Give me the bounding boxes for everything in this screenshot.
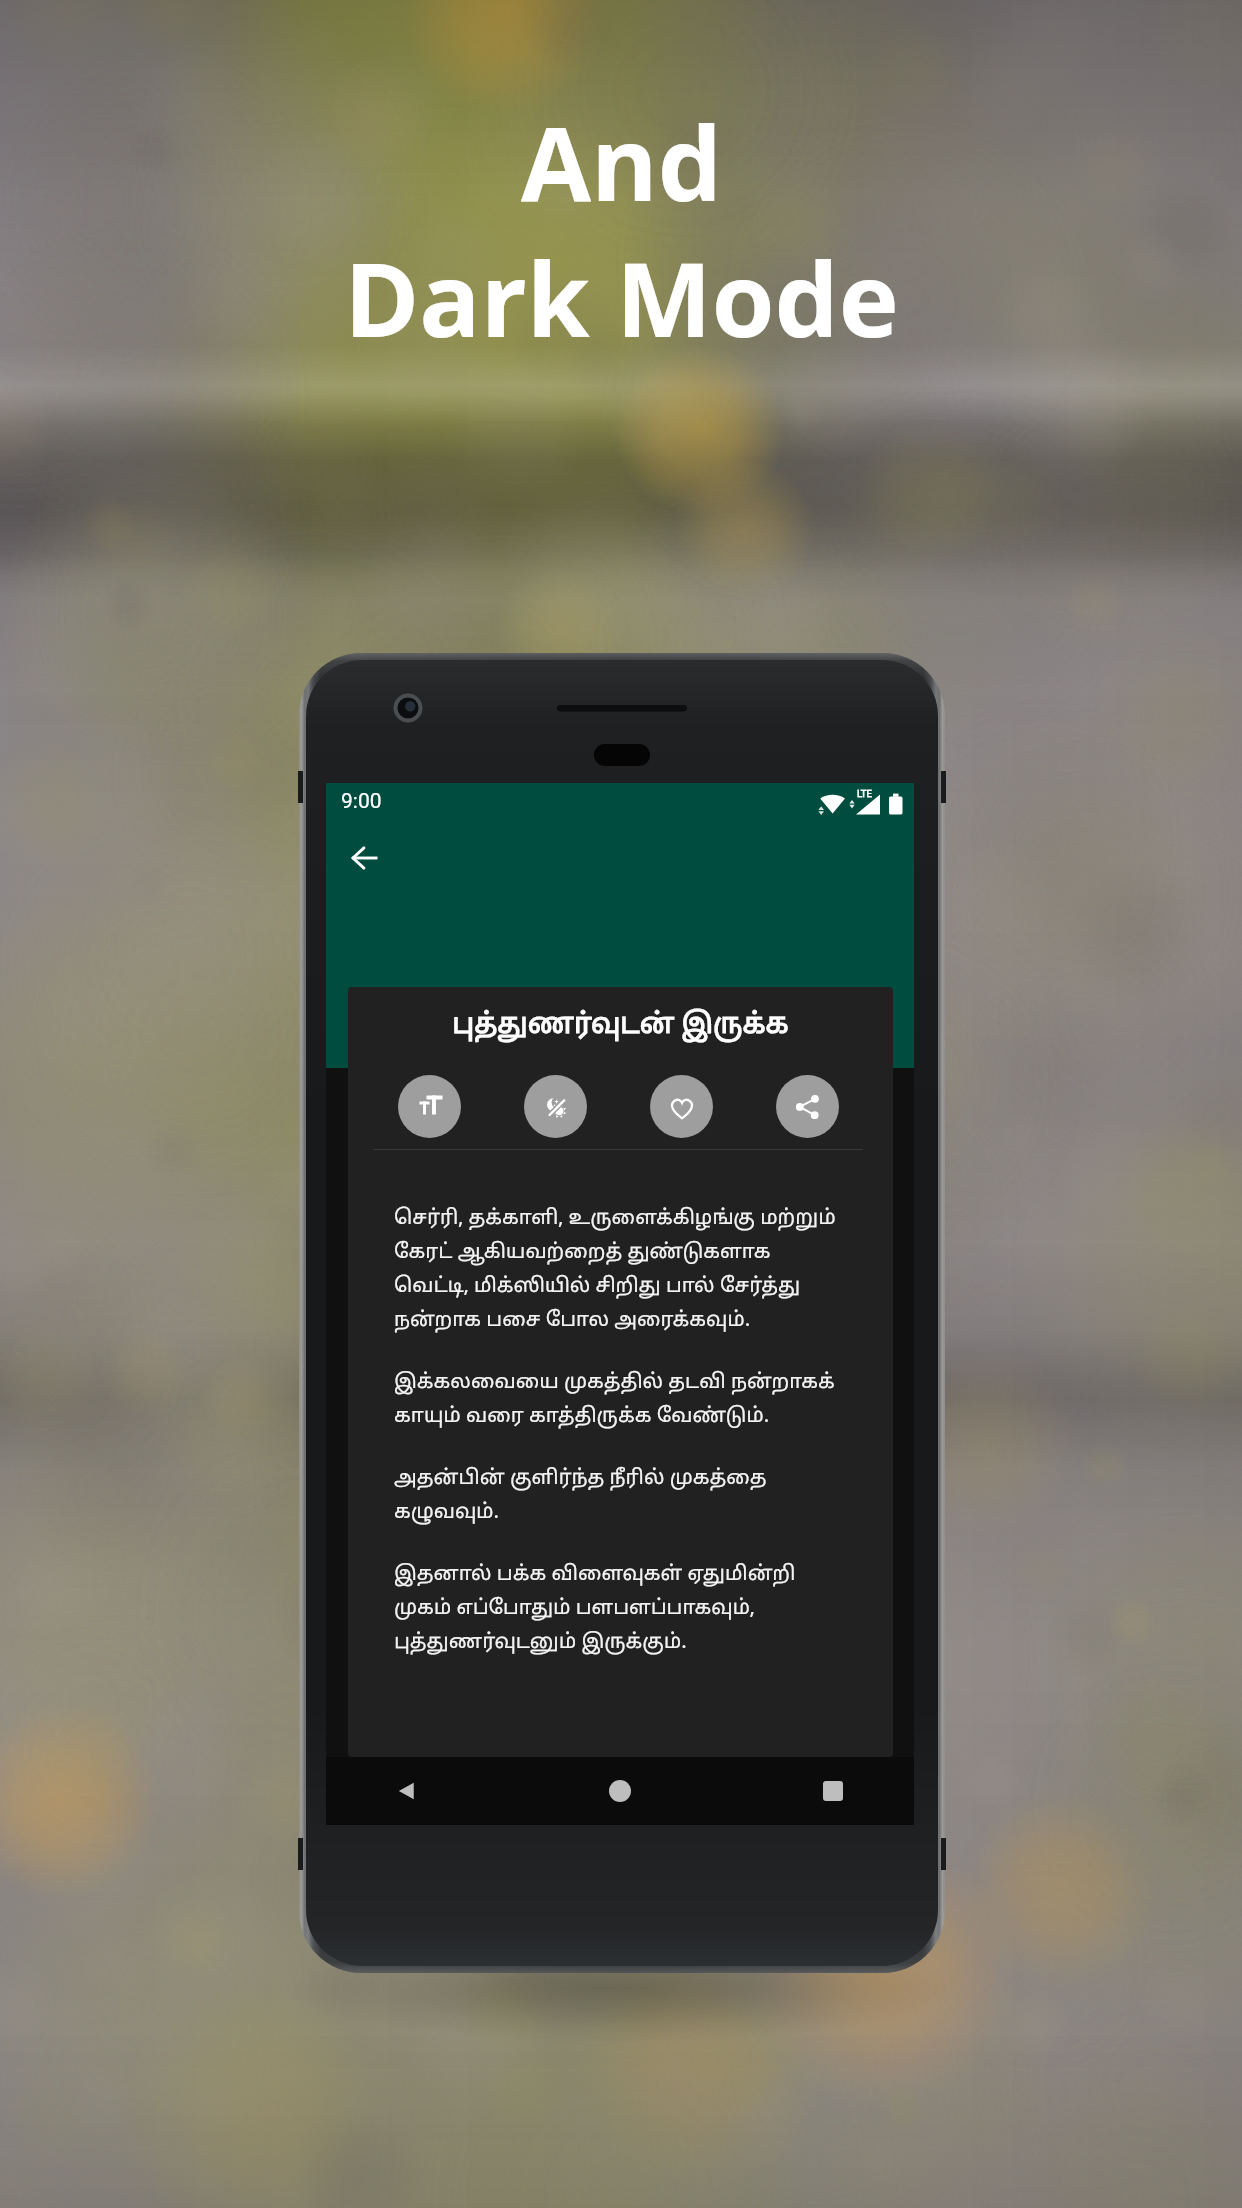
staticText: And Dark Mode [344,93,899,367]
button[interactable]: Back [337,830,393,886]
staticText: புத்துணர்வுடன் இருக்க [452,1009,789,1044]
button[interactable]: Favourite [650,1075,713,1138]
button[interactable]: Back [370,1757,444,1825]
button[interactable]: Text size [398,1075,461,1138]
button[interactable]: Home [583,1757,657,1825]
staticText: செர்ரி, தக்காளி, உருளைக்கிழங்கு மற்றும் … [394,1206,840,1333]
staticText: இதனால் பக்க விளைவுகள் ஏதுமின்றி முகம் எப… [394,1562,840,1655]
staticText: 9:00 [341,789,382,814]
staticText: இக்கலவையை முகத்தில் தடவி நன்றாகக் காயும்… [394,1370,840,1429]
button[interactable]: Share [776,1075,839,1138]
staticText: LTE [857,788,872,799]
button[interactable]: Toggle dark mode [524,1075,587,1138]
staticText: அதன்பின் குளிர்ந்த நீரில் முகத்தை கழுவவு… [394,1466,840,1525]
button[interactable]: Recents [796,1757,870,1825]
